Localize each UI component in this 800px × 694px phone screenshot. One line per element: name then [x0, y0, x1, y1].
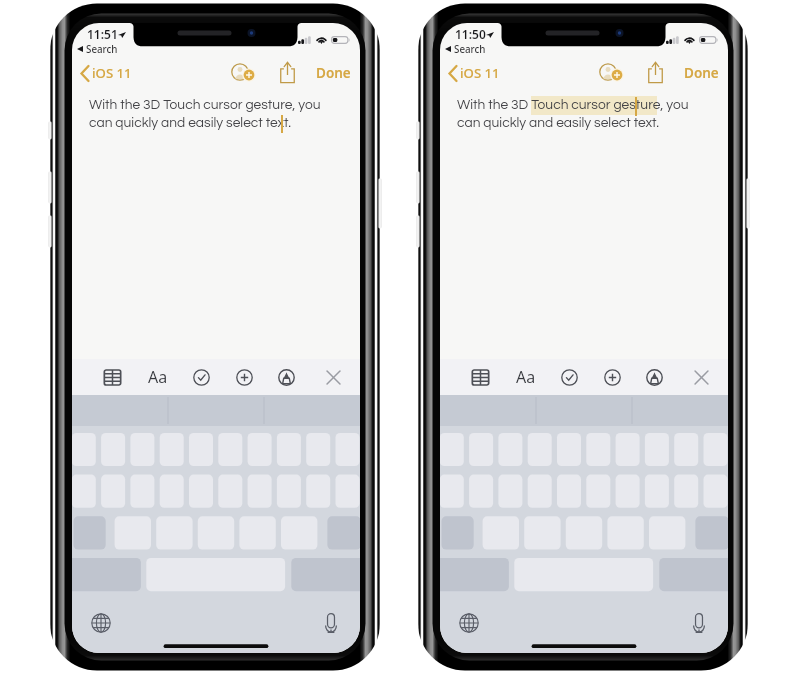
button[interactable]: iOS 11 — [80, 64, 132, 82]
staticText: Aa — [516, 366, 536, 388]
button[interactable]: Change keyboard — [454, 608, 484, 638]
button[interactable]: Checklist — [553, 359, 585, 395]
button[interactable]: Add people — [598, 63, 624, 81]
staticText: iOS 11 — [92, 64, 132, 82]
button[interactable]: Dictation — [316, 608, 346, 638]
staticText: iOS 11 — [460, 64, 500, 82]
button[interactable]: Dictation — [684, 608, 714, 638]
button[interactable]: Add attachment — [228, 359, 260, 395]
button[interactable]: Search — [445, 43, 486, 54]
button[interactable]: Close — [685, 359, 717, 395]
button[interactable]: Checklist — [185, 359, 217, 395]
staticText: 11:51 — [87, 26, 118, 42]
button[interactable]: iOS 11 — [448, 64, 500, 82]
staticText: 11:50 — [455, 26, 486, 42]
staticText: Search — [86, 43, 118, 54]
button[interactable]: Table — [464, 359, 496, 395]
button[interactable]: Change keyboard — [86, 608, 116, 638]
button[interactable]: Add attachment — [596, 359, 628, 395]
staticText: Aa — [148, 366, 168, 388]
staticText: Done — [684, 64, 719, 82]
button[interactable]: Table — [96, 359, 128, 395]
button[interactable]: Aa — [139, 359, 177, 395]
button[interactable]: Done — [315, 64, 351, 82]
button[interactable]: Markup — [638, 359, 670, 395]
button[interactable]: Done — [683, 64, 719, 82]
staticText: can quickly and easily select text. — [457, 116, 660, 130]
button[interactable]: Share — [273, 61, 301, 84]
staticText: With the 3D Touch cursor gesture, you — [89, 98, 321, 112]
button[interactable]: Close — [317, 359, 349, 395]
staticText: Done — [316, 64, 351, 82]
button[interactable]: Share — [641, 61, 669, 84]
button[interactable]: Add people — [230, 63, 256, 81]
button[interactable]: Aa — [507, 359, 545, 395]
button[interactable]: Markup — [270, 359, 302, 395]
button[interactable]: Search — [77, 43, 118, 54]
staticText: With the 3D Touch cursor gesture, you — [457, 98, 689, 112]
staticText: Search — [454, 43, 486, 54]
staticText: can quickly and easily select text. — [89, 116, 292, 130]
